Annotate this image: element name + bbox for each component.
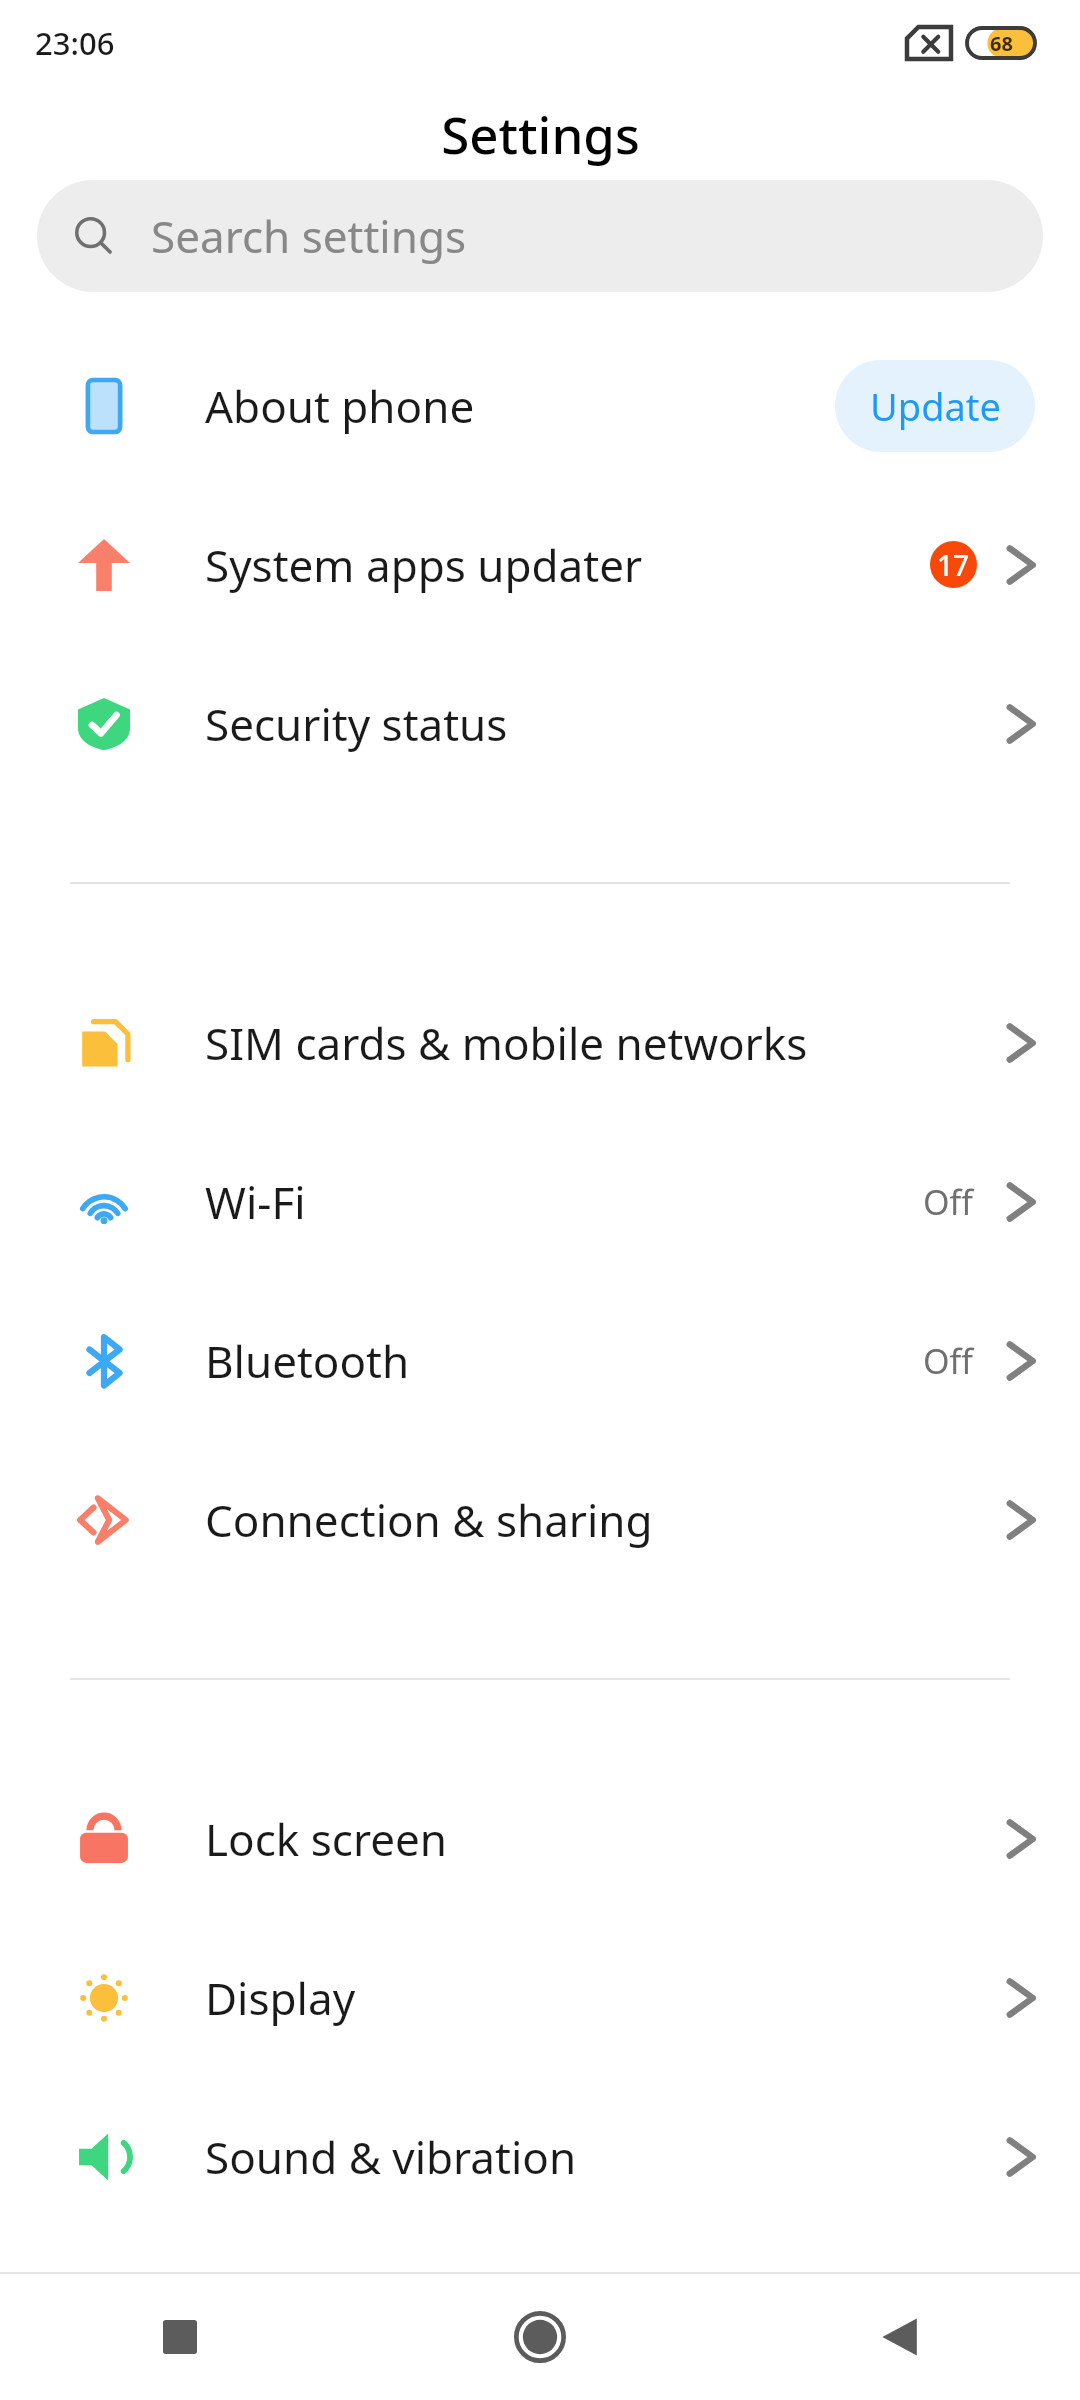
- button[interactable]: Bluetooth: [0, 1281, 1080, 1440]
- staticText: Search settings: [151, 206, 467, 266]
- staticText: Sound & vibration: [205, 2127, 577, 2187]
- button[interactable]: Sound & vibration: [0, 2077, 1080, 2236]
- staticText: 17: [937, 546, 970, 584]
- staticText: System apps updater: [205, 535, 643, 595]
- staticText: Wi-Fi: [205, 1172, 306, 1232]
- button[interactable]: Recents: [0, 2274, 360, 2400]
- button[interactable]: Connection & sharing: [0, 1440, 1080, 1599]
- staticText: Display: [205, 1968, 356, 2028]
- staticText: Off: [923, 1338, 973, 1384]
- button[interactable]: System apps updater: [0, 485, 1080, 644]
- button[interactable]: Lock screen: [0, 1759, 1080, 1918]
- button[interactable]: SIM cards & mobile networks: [0, 963, 1080, 1122]
- button[interactable]: Back: [720, 2274, 1080, 2400]
- staticText: Security status: [205, 694, 508, 754]
- button[interactable]: Update: [835, 360, 1035, 452]
- button[interactable]: Wi-Fi: [0, 1122, 1080, 1281]
- staticText: About phone: [205, 376, 475, 436]
- button[interactable]: About phone: [0, 326, 1080, 485]
- staticText: Settings: [441, 99, 640, 168]
- button[interactable]: Security status: [0, 644, 1080, 803]
- staticText: Off: [923, 1179, 973, 1225]
- button[interactable]: Search settings: [37, 180, 1043, 292]
- staticText: Lock screen: [205, 1809, 448, 1869]
- staticText: Update: [870, 380, 1001, 432]
- staticText: Bluetooth: [205, 1331, 410, 1391]
- button[interactable]: Display: [0, 1918, 1080, 2077]
- staticText: Connection & sharing: [205, 1490, 653, 1550]
- staticText: 68: [990, 30, 1013, 57]
- staticText: 23:06: [35, 22, 115, 64]
- staticText: SIM cards & mobile networks: [205, 1013, 808, 1073]
- button[interactable]: Home: [360, 2274, 720, 2400]
